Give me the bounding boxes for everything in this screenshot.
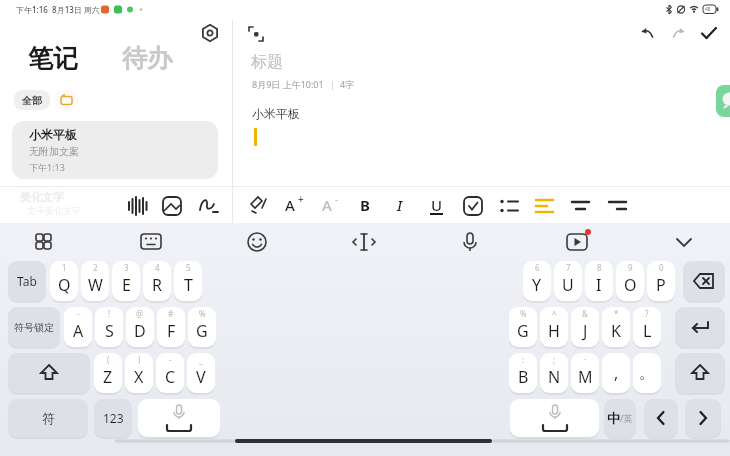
- button[interactable]: ?: [633, 307, 661, 347]
- button[interactable]: 9: [616, 261, 644, 301]
- button[interactable]: 4: [143, 261, 171, 301]
- button[interactable]: A: [285, 195, 295, 215]
- button[interactable]: [685, 399, 721, 437]
- button[interactable]: 。: [633, 353, 661, 393]
- button[interactable]: _: [187, 353, 215, 393]
- staticText: Q: [58, 274, 71, 296]
- button[interactable]: 待办: [122, 43, 172, 74]
- staticText: G: [196, 320, 208, 342]
- button[interactable]: [8, 353, 90, 393]
- staticText: -: [169, 354, 172, 365]
- button[interactable]: 符: [8, 399, 88, 437]
- button[interactable]: [639, 25, 657, 43]
- staticText: *: [614, 308, 619, 319]
- staticText: #: [168, 308, 174, 319]
- staticText: %: [520, 308, 527, 319]
- button[interactable]: 7: [554, 261, 582, 301]
- button[interactable]: &: [571, 307, 599, 347]
- button[interactable]: 2: [81, 261, 109, 301]
- staticText: 48: [705, 6, 711, 13]
- staticText: ;: [553, 354, 556, 365]
- button[interactable]: [248, 26, 264, 42]
- staticText: Tab: [17, 273, 37, 289]
- staticText: @: [136, 308, 144, 319]
- button[interactable]: U: [431, 195, 443, 215]
- button[interactable]: #: [157, 307, 185, 347]
- staticText: 小米平板: [29, 127, 77, 142]
- staticText: U: [562, 274, 574, 296]
- button[interactable]: [510, 399, 599, 437]
- button[interactable]: 中: [604, 399, 636, 437]
- staticText: L: [643, 320, 652, 342]
- button[interactable]: 5: [174, 261, 202, 301]
- button[interactable]: [669, 25, 687, 43]
- button[interactable]: 小米平板: [12, 121, 218, 179]
- button[interactable]: 全部: [14, 90, 50, 110]
- staticText: A: [73, 320, 84, 342]
- staticText: A: [322, 195, 332, 215]
- button[interactable]: ,: [602, 353, 630, 393]
- button[interactable]: %: [188, 307, 216, 347]
- button[interactable]: -: [156, 353, 184, 393]
- staticText: 文字美化文字: [27, 205, 81, 216]
- staticText: W: [88, 274, 103, 296]
- button[interactable]: 符号锁定: [8, 307, 60, 347]
- button[interactable]: 8: [585, 261, 613, 301]
- staticText: 待办: [122, 43, 172, 74]
- button[interactable]: 0: [647, 261, 675, 301]
- button[interactable]: [644, 399, 678, 437]
- button[interactable]: 123: [94, 399, 132, 437]
- button[interactable]: 3: [112, 261, 140, 301]
- staticText: /英: [620, 412, 633, 424]
- staticText: E: [122, 274, 131, 296]
- button[interactable]: :: [509, 353, 537, 393]
- staticText: T: [184, 274, 193, 296]
- button[interactable]: 1: [50, 261, 78, 301]
- button[interactable]: I: [397, 195, 403, 215]
- staticText: 标题: [251, 52, 283, 72]
- staticText: %: [199, 308, 206, 319]
- staticText: 下午1:16 8月13日 周六: [16, 4, 100, 15]
- button[interactable]: [55, 90, 78, 110]
- staticText: S: [105, 320, 114, 342]
- staticText: ·: [584, 354, 587, 365]
- button[interactable]: [698, 23, 720, 45]
- button[interactable]: ·: [571, 353, 599, 393]
- button[interactable]: [138, 399, 220, 437]
- button[interactable]: [675, 307, 725, 347]
- staticText: 0: [659, 262, 664, 273]
- staticText: F: [167, 320, 176, 342]
- button[interactable]: !: [95, 307, 123, 347]
- staticText: (: [107, 354, 110, 365]
- button[interactable]: ): [125, 353, 153, 393]
- button[interactable]: ^: [540, 307, 568, 347]
- button[interactable]: *: [602, 307, 630, 347]
- button[interactable]: A: [322, 195, 332, 215]
- button[interactable]: [683, 261, 725, 301]
- button[interactable]: 笔记: [28, 43, 78, 74]
- staticText: ^: [552, 308, 557, 319]
- staticText: 符号锁定: [14, 321, 54, 334]
- staticText: 6: [535, 262, 540, 273]
- staticText: _: [199, 354, 203, 365]
- staticText: 下午1:13: [29, 161, 65, 173]
- button[interactable]: -: [64, 307, 92, 347]
- button[interactable]: (: [94, 353, 122, 393]
- staticText: I: [397, 195, 403, 215]
- staticText: B: [518, 366, 529, 388]
- staticText: -: [77, 308, 80, 319]
- button[interactable]: [675, 353, 725, 393]
- button[interactable]: ;: [540, 353, 568, 393]
- staticText: 4: [155, 262, 160, 273]
- staticText: J: [583, 320, 588, 342]
- staticText: 无附加文案: [29, 145, 79, 158]
- button[interactable]: %: [509, 307, 537, 347]
- button[interactable]: 6: [523, 261, 551, 301]
- button[interactable]: B: [360, 195, 370, 215]
- staticText: G: [517, 320, 529, 342]
- staticText: B: [360, 195, 370, 215]
- staticText: A: [285, 195, 295, 215]
- button[interactable]: @: [126, 307, 154, 347]
- button[interactable]: Tab: [8, 261, 46, 301]
- button[interactable]: [198, 21, 222, 45]
